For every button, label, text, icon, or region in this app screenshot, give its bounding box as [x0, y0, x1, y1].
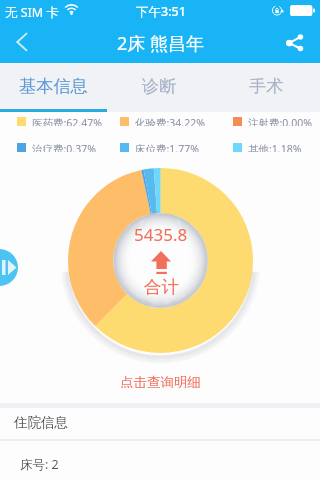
staticText: 注射费:0.00% — [248, 116, 312, 126]
staticText: 其他:1.18% — [248, 142, 302, 152]
staticText: 基本信息 — [19, 75, 88, 97]
button[interactable]: Back — [0, 20, 44, 63]
staticText: 5435.8 — [134, 223, 188, 246]
staticText: 诊断 — [142, 75, 177, 97]
button[interactable]: Expand — [0, 249, 18, 286]
staticText: 合计 — [144, 276, 179, 298]
button[interactable]: 手术 — [213, 63, 320, 109]
staticText: 床位费:1.77% — [135, 142, 199, 152]
staticText: 治疗费:0.37% — [32, 142, 96, 152]
staticText: 床号: 2 — [20, 456, 59, 473]
staticText: 住院信息 — [14, 414, 68, 431]
staticText: 点击查询明细 — [120, 374, 201, 388]
staticText: 医药费:62.47% — [32, 116, 102, 126]
staticText: 下午3:51 — [136, 3, 186, 20]
button[interactable]: 床号: 2 — [0, 440, 320, 480]
staticText: 手术 — [249, 75, 284, 97]
button[interactable]: 诊断 — [106, 63, 213, 109]
button[interactable]: Cost breakdown chart — [68, 168, 253, 353]
staticText: 2床 熊昌年 — [117, 31, 204, 56]
button[interactable]: 点击查询明细 — [102, 369, 219, 393]
button[interactable]: Share — [276, 20, 320, 63]
staticText: 无 SIM 卡 — [5, 4, 59, 21]
button[interactable]: 基本信息 — [0, 63, 106, 109]
staticText: 化验费:34.22% — [135, 116, 205, 126]
